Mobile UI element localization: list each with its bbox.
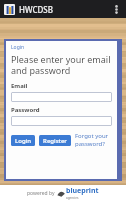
button[interactable]: Login — [11, 135, 35, 146]
button[interactable]: Forgot your password? — [75, 132, 112, 148]
staticText: Login — [11, 44, 25, 51]
staticText: blueprint — [66, 186, 99, 196]
button[interactable]: App logo — [4, 4, 15, 15]
staticText: Please enter your email and password — [11, 53, 112, 77]
button[interactable]: Register — [39, 135, 71, 146]
staticText: agencies — [66, 196, 79, 200]
staticText: Password — [11, 106, 40, 114]
staticText: Login — [15, 137, 31, 145]
button[interactable]: Email field — [11, 92, 112, 102]
staticText: Forgot your password? — [75, 132, 112, 148]
staticText: Register — [43, 137, 67, 145]
staticText: HWCDSB — [19, 4, 53, 15]
button[interactable]: More options — [110, 0, 122, 18]
staticText: Email — [11, 82, 28, 90]
staticText: powered by — [27, 190, 55, 197]
button[interactable]: Password field — [11, 116, 112, 126]
